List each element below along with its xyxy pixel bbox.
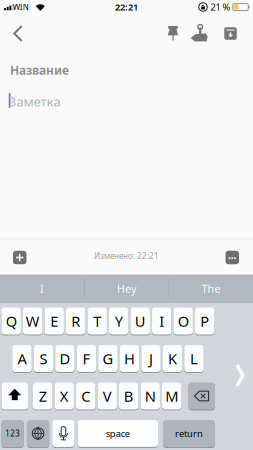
- button[interactable]: O: [173, 307, 193, 335]
- staticText: R: [71, 311, 80, 331]
- button[interactable]: J: [141, 344, 161, 372]
- staticText: K: [168, 349, 177, 368]
- button[interactable]: F: [77, 344, 96, 372]
- button[interactable]: 123: [1, 419, 24, 447]
- button[interactable]: Shift: [1, 382, 28, 410]
- staticText: A: [17, 349, 26, 368]
- button[interactable]: E: [44, 307, 64, 335]
- button[interactable]: H: [120, 344, 139, 372]
- staticText: T: [93, 311, 101, 331]
- button[interactable]: G: [98, 344, 118, 372]
- staticText: L: [190, 349, 198, 368]
- button[interactable]: T: [87, 307, 107, 335]
- button[interactable]: The: [169, 274, 253, 302]
- staticText: O: [178, 311, 189, 331]
- button[interactable]: I: [152, 307, 171, 335]
- staticText: The: [201, 281, 220, 296]
- staticText: Заметка: [8, 92, 60, 110]
- button[interactable]: Save note: [223, 26, 237, 40]
- staticText: 21 %: [210, 1, 230, 13]
- button[interactable]: return: [163, 419, 215, 447]
- staticText: S: [39, 349, 47, 368]
- staticText: 22:21: [115, 1, 138, 13]
- button[interactable]: Z: [33, 382, 52, 410]
- button[interactable]: More options: [225, 250, 240, 265]
- staticText: E: [50, 311, 58, 331]
- staticText: Z: [39, 386, 47, 406]
- button[interactable]: P: [195, 307, 214, 335]
- staticText: B: [124, 386, 134, 406]
- button[interactable]: Back: [10, 23, 26, 44]
- button[interactable]: Next keyboard: [27, 419, 49, 447]
- button[interactable]: D: [55, 344, 75, 372]
- staticText: I: [159, 311, 164, 331]
- staticText: Изменено: 22:21: [94, 251, 159, 261]
- button[interactable]: A: [12, 344, 32, 372]
- button[interactable]: Q: [1, 307, 21, 335]
- staticText: X: [60, 386, 69, 406]
- staticText: I: [40, 281, 44, 296]
- staticText: M: [165, 386, 178, 406]
- staticText: U: [135, 311, 146, 331]
- button[interactable]: M: [162, 382, 181, 410]
- staticText: space: [106, 427, 130, 440]
- staticText: H: [124, 349, 135, 368]
- button[interactable]: Add: [12, 250, 27, 265]
- staticText: N: [145, 386, 156, 406]
- button[interactable]: I: [0, 274, 84, 302]
- button[interactable]: U: [130, 307, 150, 335]
- button[interactable]: Pin note: [158, 25, 188, 41]
- button[interactable]: Delete: [188, 382, 215, 410]
- staticText: WIN: [13, 2, 29, 12]
- staticText: D: [59, 349, 70, 368]
- button[interactable]: Y: [109, 307, 128, 335]
- staticText: J: [149, 349, 153, 368]
- button[interactable]: R: [66, 307, 85, 335]
- button[interactable]: K: [163, 344, 182, 372]
- button[interactable]: Expand keyboard: [235, 363, 245, 387]
- staticText: C: [81, 386, 90, 406]
- staticText: F: [82, 349, 90, 368]
- staticText: V: [103, 386, 112, 406]
- button[interactable]: X: [54, 382, 74, 410]
- staticText: Q: [6, 311, 17, 331]
- staticText: P: [200, 311, 209, 331]
- button[interactable]: space: [78, 419, 158, 447]
- button[interactable]: W: [23, 307, 42, 335]
- button[interactable]: B: [119, 382, 138, 410]
- button[interactable]: Hey: [84, 274, 168, 302]
- button[interactable]: N: [140, 382, 160, 410]
- staticText: Название: [10, 62, 69, 78]
- staticText: 123: [5, 428, 20, 439]
- button[interactable]: C: [76, 382, 95, 410]
- staticText: G: [102, 349, 113, 368]
- staticText: W: [26, 311, 40, 331]
- button[interactable]: V: [97, 382, 117, 410]
- button[interactable]: Dictate: [52, 419, 75, 447]
- button[interactable]: L: [184, 344, 204, 372]
- button[interactable]: Protect note: [186, 24, 214, 43]
- staticText: Hey: [117, 281, 136, 296]
- staticText: return: [175, 427, 203, 440]
- button[interactable]: S: [34, 344, 53, 372]
- staticText: Y: [115, 311, 123, 331]
